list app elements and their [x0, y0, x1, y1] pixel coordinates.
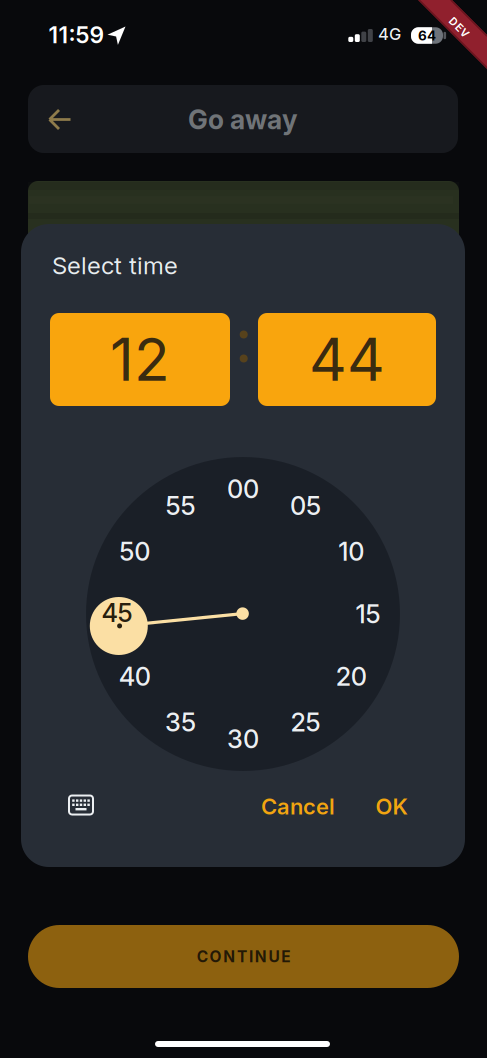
staticText: 55	[165, 490, 195, 521]
staticText: 12	[110, 324, 170, 395]
staticText: 45	[101, 597, 132, 628]
button[interactable]: 30 minutes	[221, 717, 265, 761]
staticText: 64	[418, 27, 436, 44]
staticText: 30	[227, 724, 259, 754]
staticText: 40	[119, 661, 151, 692]
staticText: 35	[165, 707, 196, 738]
button[interactable]: Switch to keyboard input	[59, 783, 103, 827]
staticText: CONTINUE	[197, 947, 290, 966]
button[interactable]: 00 minutes	[221, 467, 265, 511]
button[interactable]: Back	[38, 97, 82, 141]
button[interactable]: OK	[361, 784, 421, 828]
staticText: 10	[338, 536, 364, 567]
staticText: 50	[119, 536, 150, 567]
staticText: 44	[309, 324, 385, 395]
button[interactable]: 10 minutes	[329, 529, 373, 573]
staticText: 4G	[378, 24, 401, 44]
staticText: DEV	[447, 21, 471, 34]
button[interactable]: 35 minutes	[158, 700, 202, 744]
button[interactable]: 15 minutes	[346, 592, 390, 636]
button[interactable]: 50 minutes	[113, 529, 157, 573]
staticText: 15	[355, 599, 380, 629]
button[interactable]: 20 minutes	[329, 654, 373, 698]
staticText: 05	[290, 490, 321, 521]
button[interactable]: 25 minutes	[283, 700, 327, 744]
staticText: 20	[336, 661, 367, 692]
button[interactable]: 40 minutes	[113, 654, 157, 698]
staticText: Cancel	[261, 793, 335, 820]
staticText: OK	[375, 793, 407, 820]
staticText: 11:59	[48, 21, 104, 49]
staticText: Select time	[52, 251, 178, 280]
staticText: 00	[227, 474, 259, 504]
button[interactable]: CONTINUE	[28, 925, 459, 988]
button[interactable]: Cancel	[250, 784, 346, 828]
button[interactable]: 05 minutes	[283, 484, 327, 528]
button[interactable]: 55 minutes	[158, 484, 202, 528]
staticText: Go away	[188, 103, 298, 136]
staticText: 25	[290, 707, 320, 738]
button[interactable]: Hour	[50, 313, 230, 406]
button[interactable]: Minute	[258, 313, 436, 406]
